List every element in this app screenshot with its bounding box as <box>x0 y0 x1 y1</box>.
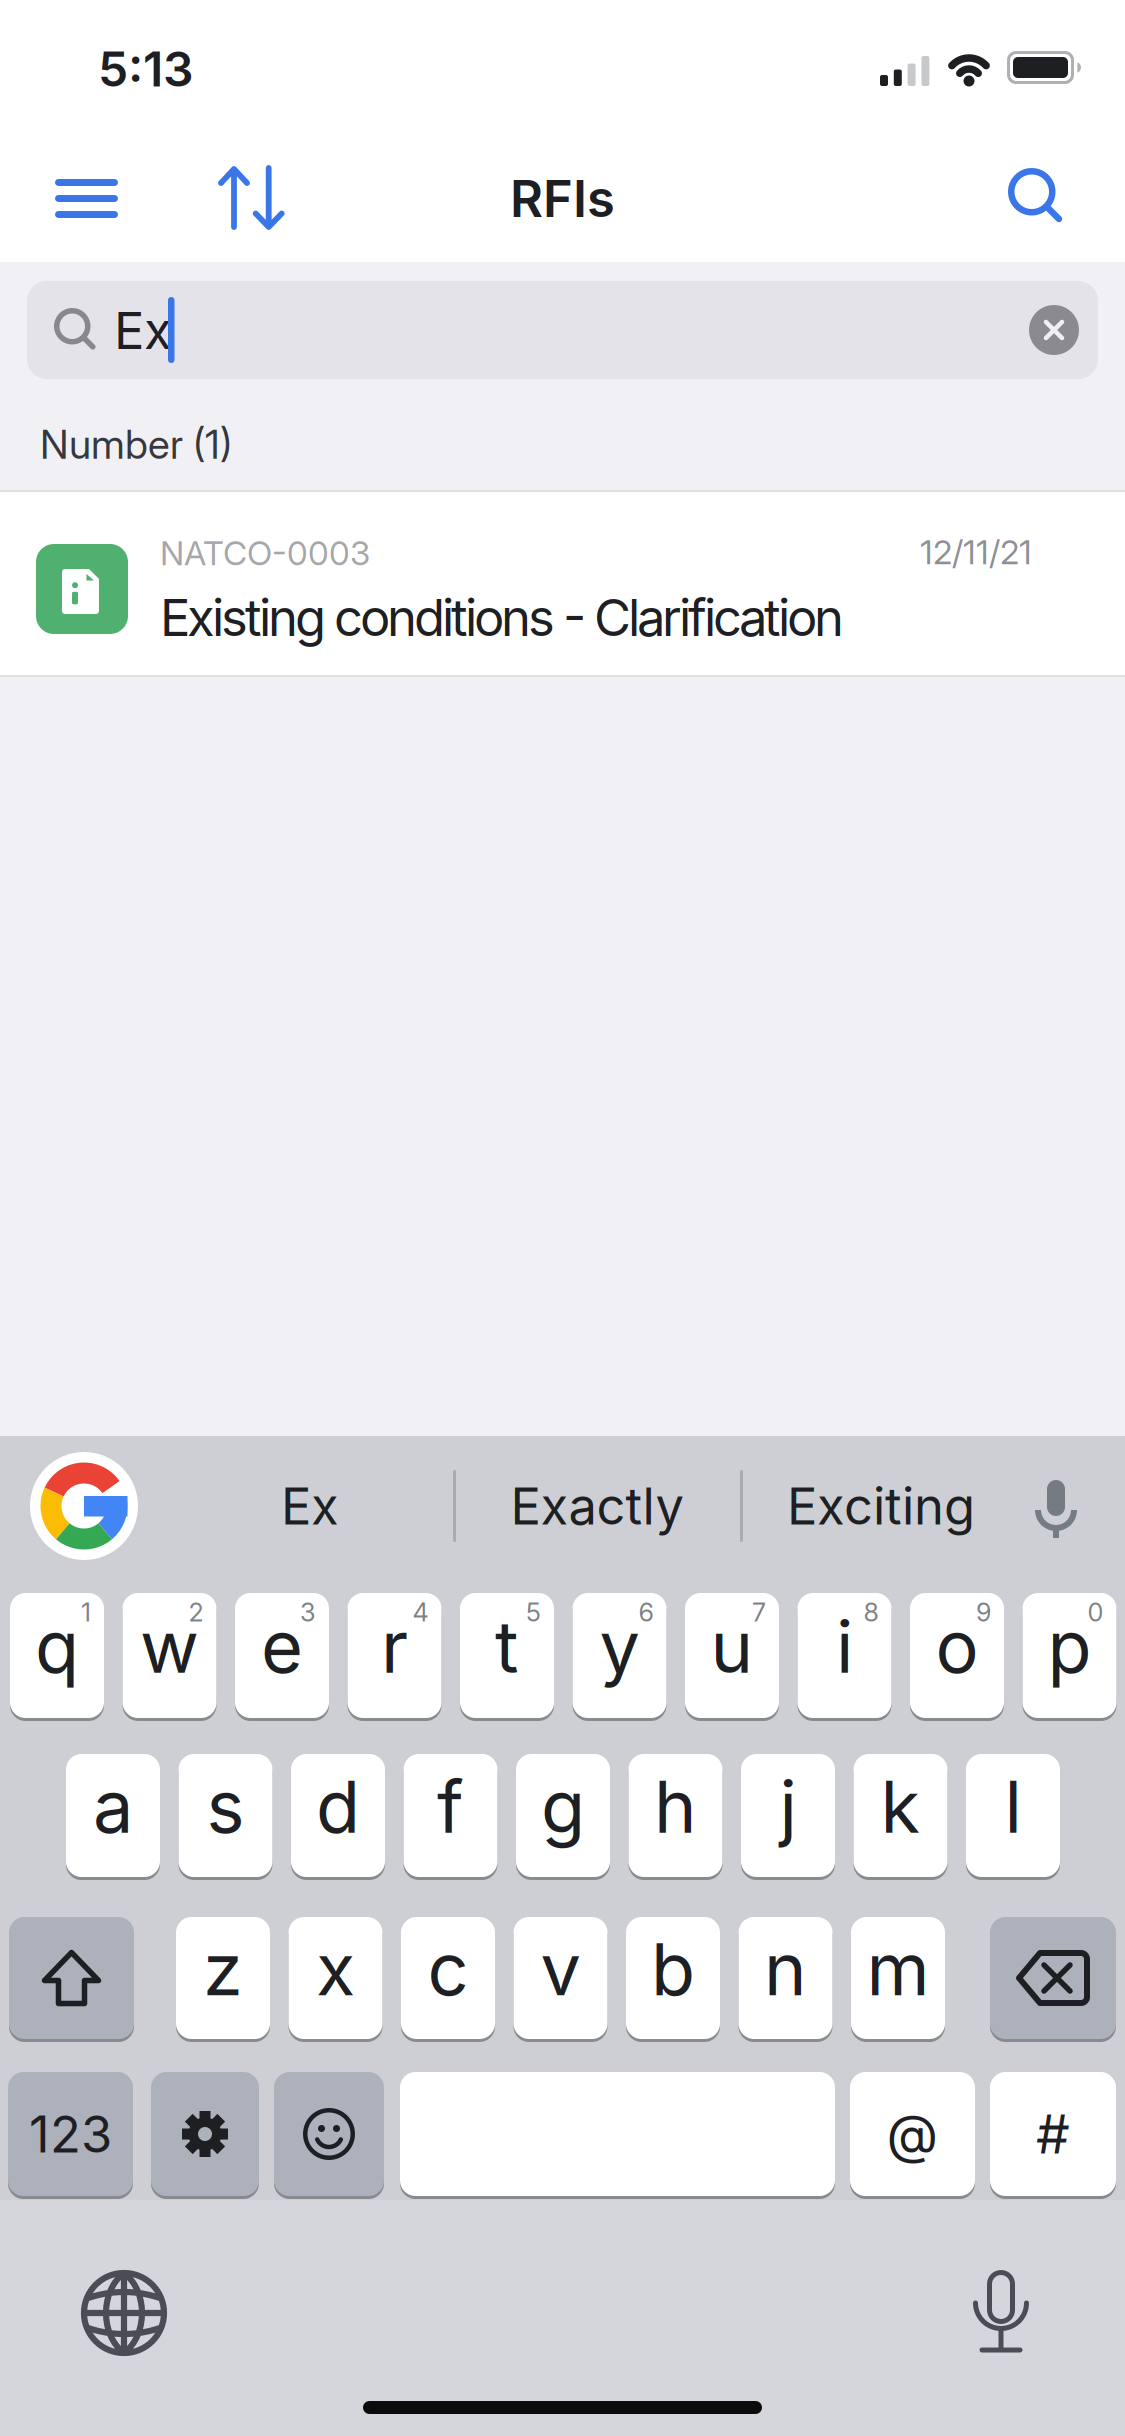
button[interactable]: Shift <box>9 1917 134 2039</box>
button[interactable]: NATCO-0003 <box>0 490 1125 677</box>
button[interactable]: a <box>66 1754 160 1877</box>
staticText: q <box>35 1603 79 1690</box>
button[interactable]: Search <box>27 281 1098 379</box>
button[interactable]: # <box>990 2072 1116 2196</box>
button[interactable]: 123 <box>8 2072 133 2196</box>
button[interactable]: Sort <box>220 166 284 230</box>
staticText: i <box>836 1603 853 1690</box>
button[interactable]: Exactly <box>477 1446 717 1566</box>
button[interactable]: u <box>685 1593 779 1718</box>
button[interactable]: Emoji <box>274 2072 384 2196</box>
staticText: Exactly <box>510 1475 683 1537</box>
button[interactable]: Delete <box>990 1917 1116 2039</box>
button[interactable]: b <box>626 1917 720 2039</box>
button[interactable]: n <box>738 1917 832 2039</box>
button[interactable]: Dictation <box>972 2270 1030 2354</box>
staticText: Exciting <box>787 1475 975 1537</box>
button[interactable]: Google search <box>30 1452 138 1560</box>
button[interactable]: w <box>122 1593 216 1718</box>
staticText: Ex <box>114 300 172 361</box>
staticText: 2 <box>188 1597 203 1628</box>
staticText: c <box>427 1925 468 2012</box>
staticText: r <box>381 1603 408 1690</box>
button[interactable]: Voice input <box>1035 1480 1077 1538</box>
staticText: l <box>1004 1763 1021 1850</box>
staticText: u <box>710 1603 753 1690</box>
staticText: NATCO-0003 <box>160 533 370 573</box>
button[interactable]: p <box>1022 1593 1116 1718</box>
staticText: d <box>316 1763 360 1850</box>
staticText: v <box>540 1925 580 2012</box>
button[interactable]: t <box>460 1593 554 1718</box>
button[interactable]: d <box>291 1754 385 1877</box>
staticText: 5 <box>526 1597 541 1628</box>
staticText: j <box>779 1763 796 1850</box>
staticText: w <box>140 1603 199 1690</box>
staticText: Ex <box>281 1475 339 1537</box>
staticText: 7 <box>752 1597 766 1628</box>
staticText: 1 <box>81 1597 91 1628</box>
staticText: 123 <box>29 2103 112 2165</box>
button[interactable]: q <box>10 1593 104 1718</box>
button[interactable]: f <box>403 1754 497 1877</box>
staticText: 8 <box>863 1597 878 1628</box>
button[interactable]: g <box>516 1754 610 1877</box>
staticText: 4 <box>412 1597 428 1628</box>
staticText: z <box>203 1925 243 2012</box>
staticText: m <box>866 1925 929 2012</box>
button[interactable]: v <box>513 1917 607 2039</box>
staticText: p <box>1047 1603 1091 1690</box>
button[interactable]: l <box>966 1754 1060 1877</box>
staticText: @ <box>886 2102 938 2166</box>
staticText: RFIs <box>510 168 615 229</box>
button[interactable]: z <box>176 1917 270 2039</box>
button[interactable]: Exciting <box>761 1446 1001 1566</box>
staticText: 0 <box>1087 1597 1103 1628</box>
staticText: b <box>651 1925 695 2012</box>
button[interactable]: c <box>401 1917 495 2039</box>
button[interactable]: Menu <box>55 179 118 218</box>
staticText: 5:13 <box>98 40 194 98</box>
staticText: Number (1) <box>40 420 232 468</box>
button[interactable]: j <box>741 1754 835 1877</box>
button[interactable]: e <box>235 1593 329 1718</box>
button[interactable]: r <box>347 1593 441 1718</box>
button[interactable]: x <box>288 1917 382 2039</box>
button[interactable]: o <box>910 1593 1004 1718</box>
button[interactable]: m <box>851 1917 945 2039</box>
button[interactable]: Settings <box>151 2072 259 2196</box>
staticText: t <box>495 1603 519 1690</box>
staticText: 9 <box>976 1597 991 1628</box>
staticText: f <box>437 1763 464 1850</box>
staticText: a <box>93 1763 133 1850</box>
button[interactable]: @ <box>850 2072 975 2196</box>
staticText: k <box>880 1763 920 1850</box>
button[interactable]: Ex <box>190 1446 430 1566</box>
button[interactable]: Search <box>1008 168 1069 229</box>
button[interactable]: y <box>572 1593 666 1718</box>
staticText: 3 <box>300 1597 316 1628</box>
staticText: n <box>764 1925 807 2012</box>
button[interactable]: Next keyboard <box>80 2269 168 2357</box>
staticText: h <box>654 1763 697 1850</box>
staticText: x <box>316 1925 355 2012</box>
button[interactable]: s <box>178 1754 272 1877</box>
staticText: Existing conditions - Clarification <box>160 587 844 648</box>
staticText: g <box>541 1763 585 1850</box>
staticText: s <box>206 1763 244 1850</box>
staticText: y <box>599 1603 639 1690</box>
staticText: 12/11/21 <box>920 532 1032 572</box>
button[interactable]: h <box>628 1754 722 1877</box>
button[interactable]: i <box>797 1593 891 1718</box>
button[interactable]: Clear text <box>1029 305 1079 355</box>
staticText: 6 <box>638 1597 653 1628</box>
button[interactable]: space <box>400 2072 835 2196</box>
staticText: # <box>1036 2102 1070 2166</box>
button[interactable]: k <box>853 1754 947 1877</box>
staticText: e <box>261 1603 303 1690</box>
staticText: o <box>935 1603 978 1690</box>
